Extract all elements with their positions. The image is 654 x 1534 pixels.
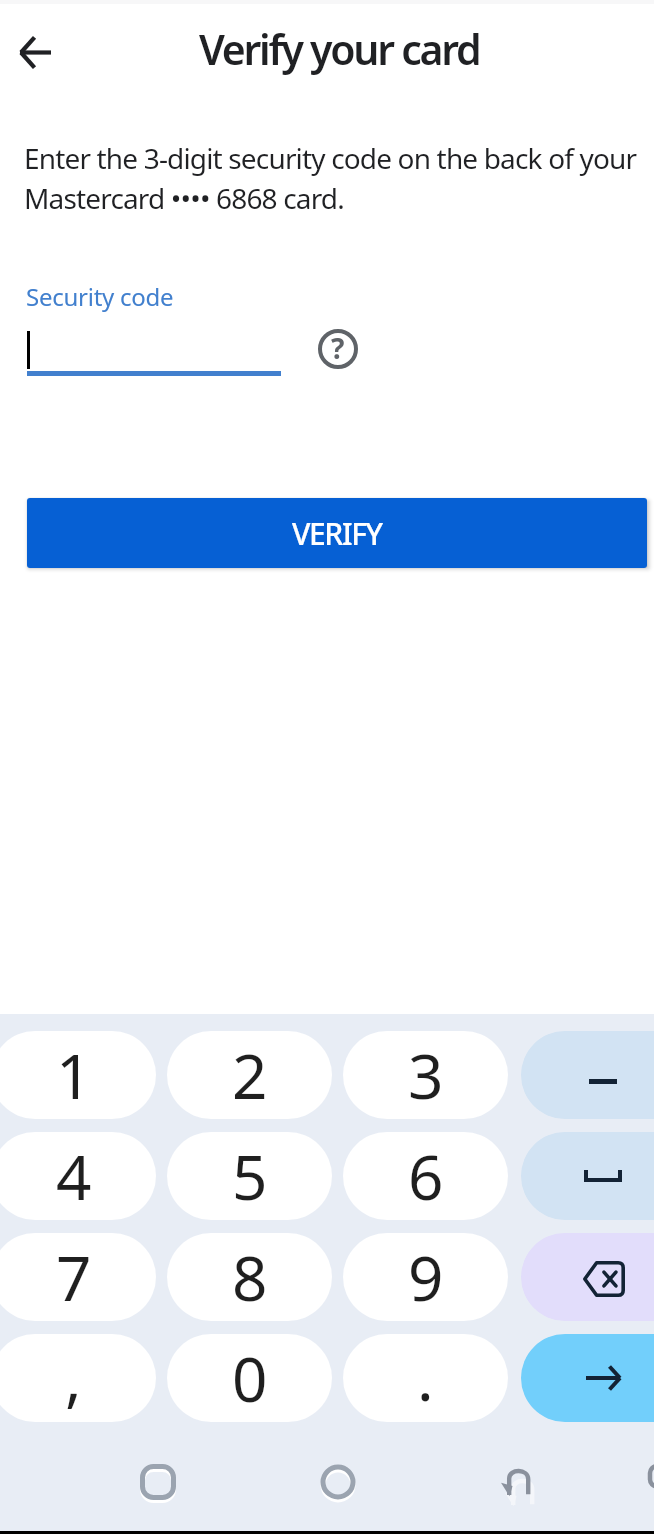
button[interactable]: 3 <box>343 1031 508 1119</box>
staticText: VERIFY <box>292 513 382 554</box>
staticText: Verify your card <box>199 21 480 77</box>
button[interactable]: VERIFY <box>27 498 647 568</box>
button[interactable]: Home <box>308 1452 368 1512</box>
button[interactable]: 1 <box>0 1031 156 1119</box>
button[interactable]: Back <box>487 1452 547 1512</box>
button[interactable]: Help <box>314 325 362 373</box>
staticText: 4 <box>56 1134 92 1218</box>
button[interactable]: 8 <box>167 1233 332 1321</box>
staticText: 1 <box>56 1033 92 1117</box>
staticText: 8 <box>232 1235 268 1319</box>
staticText: , <box>65 1335 82 1419</box>
staticText: Enter the 3-digit security code on the b… <box>24 139 637 177</box>
staticText: . <box>417 1335 434 1419</box>
staticText: 9 <box>408 1235 444 1319</box>
staticText: Security code <box>26 280 174 313</box>
button[interactable]: Enter <box>521 1334 654 1422</box>
button[interactable]: . <box>343 1334 508 1422</box>
button[interactable]: Back <box>2 19 68 85</box>
button[interactable]: Hide keyboard <box>637 1454 654 1510</box>
staticText: 6 <box>408 1134 444 1218</box>
button[interactable]: Recent apps <box>128 1452 188 1512</box>
button[interactable]: , <box>0 1334 156 1422</box>
button[interactable]: Security code input <box>27 331 281 376</box>
button[interactable]: 5 <box>167 1132 332 1220</box>
staticText: 0 <box>232 1336 268 1420</box>
staticText: 7 <box>56 1235 92 1319</box>
button[interactable]: Space <box>521 1132 654 1220</box>
button[interactable]: 7 <box>0 1233 156 1321</box>
button[interactable]: Backspace <box>521 1233 654 1321</box>
button[interactable]: 2 <box>167 1031 332 1119</box>
staticText: 5 <box>232 1134 268 1218</box>
staticText: 3 <box>408 1033 444 1117</box>
staticText: 2 <box>232 1033 268 1117</box>
button[interactable]: 4 <box>0 1132 156 1220</box>
button[interactable]: 9 <box>343 1233 508 1321</box>
staticText: ? <box>331 329 345 367</box>
button[interactable]: 6 <box>343 1132 508 1220</box>
button[interactable]: 0 <box>167 1334 332 1422</box>
button[interactable]: Dash <box>521 1031 654 1119</box>
staticText: Mastercard •••• 6868 card. <box>24 179 344 217</box>
